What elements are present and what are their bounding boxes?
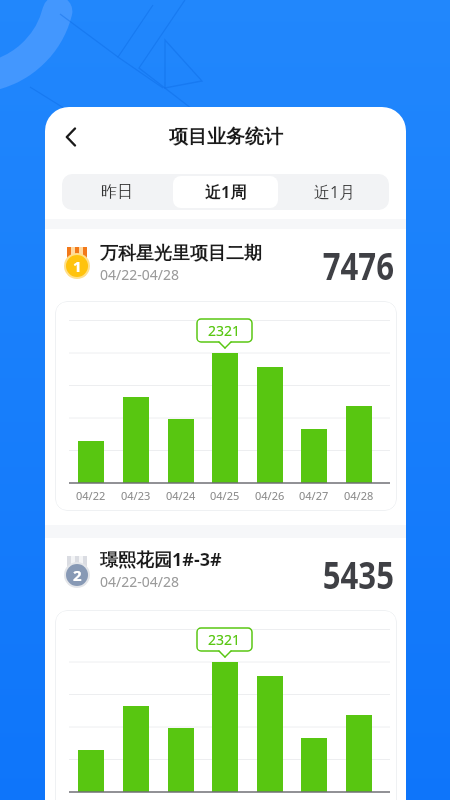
- staticText: 04/27: [299, 488, 329, 503]
- staticText: 万科星光里项目二期: [100, 242, 262, 265]
- staticText: 7476: [323, 239, 394, 289]
- button[interactable]: 近1月: [280, 174, 389, 210]
- staticText: 04/26: [255, 488, 285, 503]
- staticText: 04/22-04/28: [100, 572, 179, 591]
- staticText: 04/22: [76, 488, 106, 503]
- staticText: 2321: [208, 321, 241, 340]
- button[interactable]: 2: [45, 548, 406, 610]
- staticText: 近1月: [314, 181, 356, 203]
- staticText: 5435: [323, 548, 394, 598]
- staticText: 近1周: [205, 181, 247, 203]
- button[interactable]: 1: [45, 239, 406, 301]
- staticText: 04/28: [344, 488, 374, 503]
- staticText: 璟熙花园1#-3#: [100, 547, 222, 572]
- staticText: 04/25: [210, 488, 240, 503]
- staticText: 2: [73, 565, 82, 585]
- staticText: 04/23: [121, 488, 151, 503]
- button[interactable]: 昨日: [62, 174, 171, 210]
- staticText: 04/24: [166, 488, 196, 503]
- staticText: 1: [73, 256, 82, 276]
- staticText: 昨日: [101, 182, 133, 202]
- staticText: 2321: [208, 630, 241, 649]
- button[interactable]: 近1周: [173, 176, 278, 208]
- staticText: 04/22-04/28: [100, 265, 179, 284]
- staticText: 项目业务统计: [169, 125, 283, 149]
- button[interactable]: [49, 115, 93, 159]
